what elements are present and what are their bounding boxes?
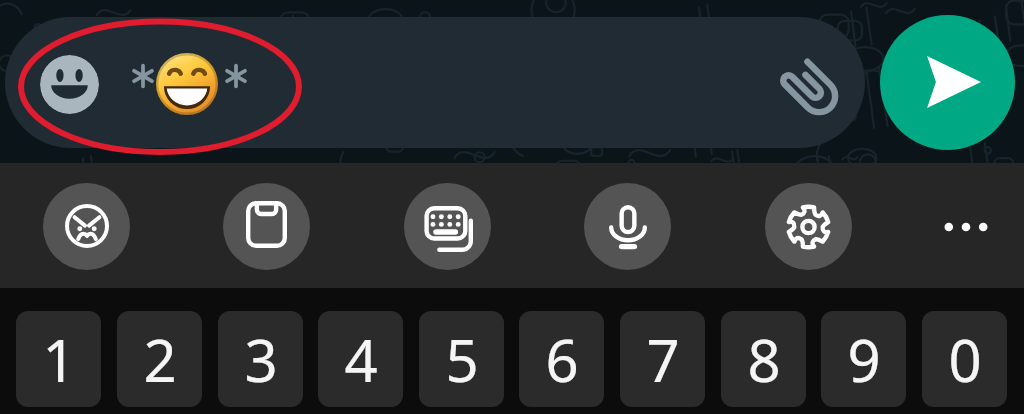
staticText: 0 [948,320,982,399]
button[interactable]: Settings [765,183,852,270]
button[interactable]: Stickers [223,183,310,270]
staticText: 5 [445,320,479,399]
button[interactable]: 8 [721,311,806,407]
button[interactable]: 5 [419,311,504,407]
button[interactable]: 3 [218,311,303,407]
staticText: 2 [143,320,177,399]
button[interactable]: 1 [16,311,101,407]
button[interactable]: More options [929,191,1001,263]
staticText: 9 [847,320,881,399]
button[interactable]: Attach [772,49,844,121]
button[interactable]: Send [880,15,1015,150]
button[interactable]: Keyboard [404,183,491,270]
button[interactable]: Voice [584,183,671,270]
staticText: 8 [747,320,781,399]
staticText: 3 [244,320,278,399]
staticText: 7 [646,320,680,399]
button[interactable]: 0 [922,311,1007,407]
staticText: 1 [42,320,76,399]
button[interactable]: 4 [318,311,403,407]
button[interactable]: 7 [620,311,705,407]
button[interactable]: 2 [117,311,202,407]
button[interactable]: Emoji [43,183,130,270]
button[interactable]: 6 [519,311,604,407]
button[interactable]: Emoji [40,55,99,114]
staticText: 4 [344,320,378,399]
button[interactable]: 9 [821,311,906,407]
staticText: 6 [545,320,579,399]
button[interactable]: Emoji [5,17,865,148]
